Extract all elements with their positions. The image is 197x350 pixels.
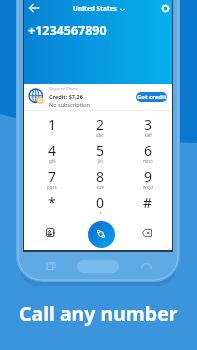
staticText: Get credit [137,93,167,101]
button[interactable]: Call [88,221,115,248]
button[interactable]: 2 [76,114,124,140]
staticText: 9 [144,167,153,186]
button[interactable]: 9 [124,166,172,192]
staticText: + [99,210,102,216]
staticText: Skype to Phone [49,86,79,91]
staticText: 3 [144,115,153,134]
staticText: wxyz [143,184,154,190]
button[interactable]: Settings [157,0,173,16]
staticText: tuv [97,184,104,190]
button[interactable]: United States [73,4,125,13]
button[interactable]: 4 [28,140,76,166]
staticText: 6 [144,141,153,160]
button[interactable]: 0 [76,192,124,218]
staticText: 5 [96,141,105,160]
button[interactable]: Recents [42,257,60,275]
staticText: Call any number [19,300,178,327]
staticText: 0 [96,193,105,212]
staticText: United States [73,4,117,13]
staticText: Credit: $7,26 [49,93,83,100]
staticText: pqrs [47,184,57,190]
staticText: jkl [98,158,103,164]
staticText: # [143,193,153,212]
button[interactable]: 5 [76,140,124,166]
staticText: 2 [96,115,105,134]
button[interactable]: Back [26,0,42,16]
staticText: 7 [48,167,57,186]
staticText: 4 [48,141,57,160]
staticText: +1234567890 [28,22,107,39]
staticText: ghi [49,158,56,164]
button[interactable]: Add contact [40,222,61,243]
staticText: 1 [48,115,57,134]
button[interactable]: Home [77,260,119,273]
staticText: No subscription [49,101,90,108]
staticText: mno [143,158,153,164]
button[interactable]: 6 [124,140,172,166]
button[interactable]: Back [137,257,155,275]
button[interactable]: Backspace [136,222,157,243]
button[interactable]: Get credit [136,92,167,102]
staticText: def [145,132,152,138]
staticText: abc [96,132,104,138]
button[interactable]: * [28,192,76,218]
button[interactable]: 3 [124,114,172,140]
staticText: 8 [96,167,105,186]
button[interactable]: 8 [76,166,124,192]
button[interactable]: 1 [28,114,76,140]
staticText: * [48,193,56,212]
button[interactable]: 7 [28,166,76,192]
button[interactable]: # [124,192,172,218]
